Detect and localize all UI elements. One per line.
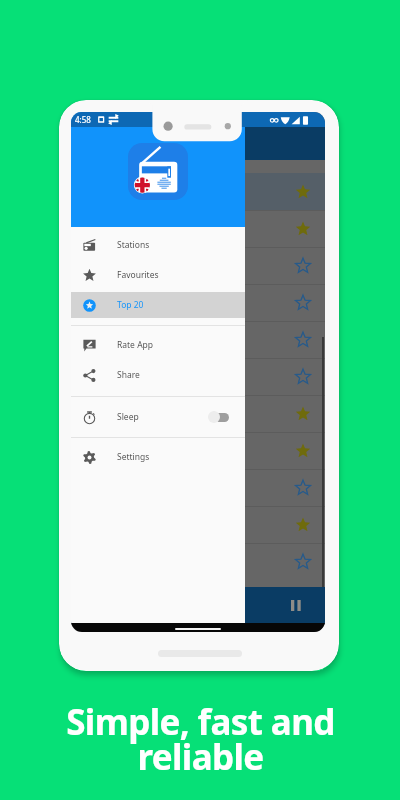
button[interactable]: [71, 210, 325, 247]
staticText: Sleep: [117, 411, 139, 423]
button[interactable]: [71, 506, 325, 543]
staticText: Top 20: [117, 299, 144, 311]
button[interactable]: Rate App: [71, 330, 245, 360]
button[interactable]: [71, 358, 325, 395]
staticText: Share: [117, 369, 140, 381]
button[interactable]: [71, 284, 325, 321]
staticText: Simple, fast and reliable: [66, 698, 335, 781]
button[interactable]: [71, 247, 325, 284]
button[interactable]: Stations: [71, 230, 245, 260]
button[interactable]: Favourites: [71, 260, 245, 290]
button[interactable]: [71, 395, 325, 432]
staticText: Settings: [117, 451, 150, 463]
button[interactable]: Pause: [71, 587, 325, 624]
staticText: Favourites: [117, 269, 159, 281]
button[interactable]: [71, 432, 325, 469]
staticText: Rate App: [117, 339, 154, 351]
button[interactable]: [71, 127, 325, 160]
button[interactable]: Top 20: [71, 290, 245, 320]
button[interactable]: [71, 173, 325, 210]
button[interactable]: [71, 321, 325, 358]
button[interactable]: Share: [71, 360, 245, 390]
button[interactable]: Settings: [71, 442, 245, 472]
staticText: 4:58: [75, 114, 91, 125]
other: Pause: [291, 600, 301, 611]
button[interactable]: Sleep: [71, 402, 245, 432]
button[interactable]: [71, 543, 325, 580]
button[interactable]: [71, 469, 325, 506]
staticText: Stations: [117, 239, 150, 251]
